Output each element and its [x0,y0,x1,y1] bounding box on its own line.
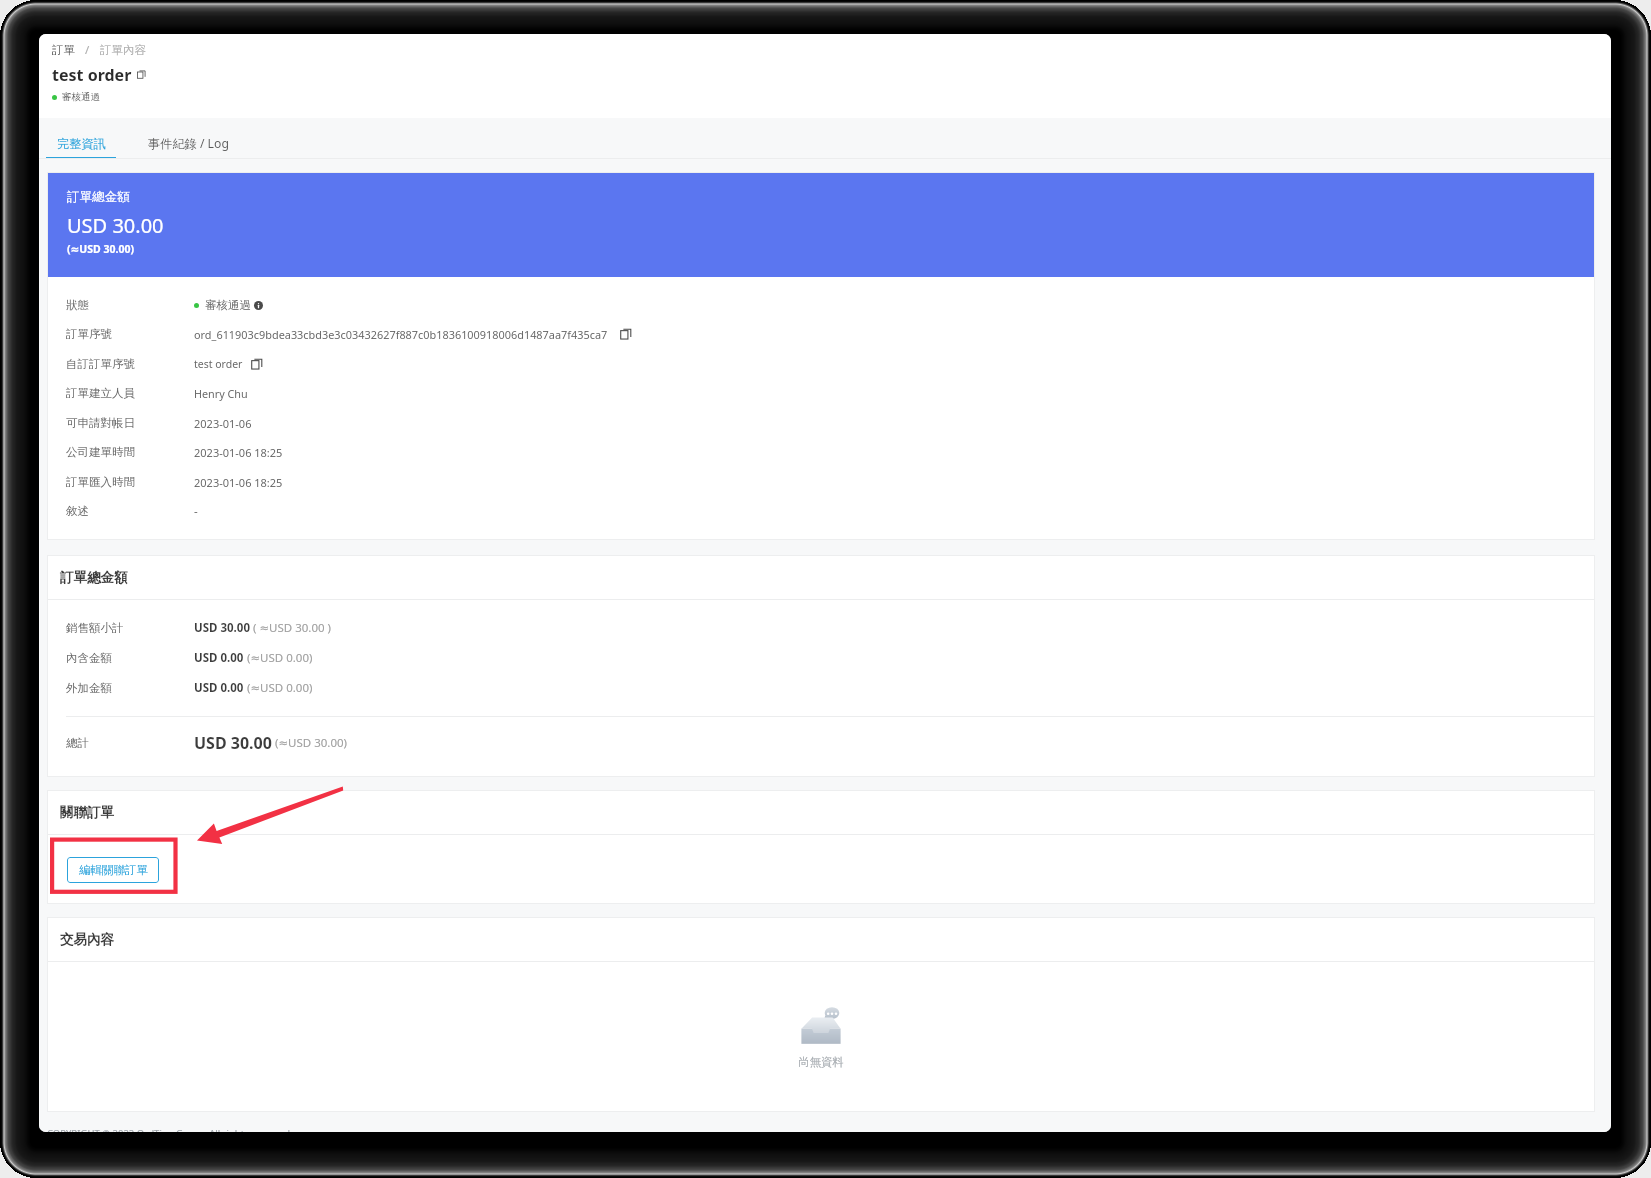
staticText: ( ≈USD 30.00 ) [250,620,332,636]
staticText: 內含金額 [66,651,112,665]
staticText: ord_611903c9bdea33cbd3e3c03432627f887c0b… [194,327,608,342]
staticText: 自訂訂單序號 [66,357,135,371]
staticText: (≈USD 0.00) [244,680,313,696]
staticText: 訂單建立人員 [66,386,135,400]
other: Copy [620,328,632,340]
staticText: USD 0.00 [194,650,244,666]
staticText: 訂單內容 [100,43,146,57]
staticText: (≈USD 30.00) [275,735,348,751]
staticText: 2023-01-06 18:25 [194,475,283,490]
staticText: 訂單總金額 [60,569,128,586]
staticText: USD 30.00 [194,620,250,636]
staticText: 訂單總金額 [67,189,130,205]
staticText: 審核通過 [62,91,100,103]
staticText: 交易內容 [60,931,114,948]
staticText: 訂單序號 [66,327,112,341]
staticText: 總計 [66,736,89,750]
staticText: 編輯關聯訂單 [79,863,148,877]
staticText: 敘述 [66,504,89,518]
staticText: USD 30.00 [67,212,164,239]
staticText: 狀態 [66,298,89,312]
staticText: 尚無資料 [798,1055,844,1069]
staticText: 事件紀錄 / Log [148,135,229,152]
staticText: 關聯訂單 [60,804,114,821]
staticText: 訂單匯入時間 [66,475,135,489]
staticText: 2023-01-06 18:25 [194,445,283,460]
staticText: - [194,503,198,519]
staticText: 訂單 [52,43,75,57]
other: Copy [137,70,146,79]
staticText: test order [194,357,243,371]
staticText: 可申請對帳日 [66,416,135,430]
staticText: 2023-01-06 [194,416,252,431]
staticText: COPYRIGHT © 2022 OwlTing Group. All righ… [47,1127,293,1132]
staticText: 公司建單時間 [66,445,135,459]
button[interactable]: 事件紀錄 / Log [116,118,248,159]
staticText: 外加金額 [66,681,112,695]
staticText: 審核通過 [205,298,251,312]
staticText: Henry Chu [194,386,248,401]
button[interactable]: 編輯關聯訂單 [67,857,159,883]
staticText: 完整資訊 [57,136,106,151]
other: Copy [251,358,263,370]
staticText: (≈USD 0.00) [244,650,313,666]
staticText: (≈USD 30.00) [67,242,135,256]
staticText: 銷售額小計 [66,621,124,635]
staticText: USD 0.00 [194,680,244,696]
button[interactable]: 完整資訊 [46,118,116,159]
staticText: / [85,42,90,58]
staticText: USD 30.00 [194,732,272,754]
staticText: test order [52,64,132,84]
